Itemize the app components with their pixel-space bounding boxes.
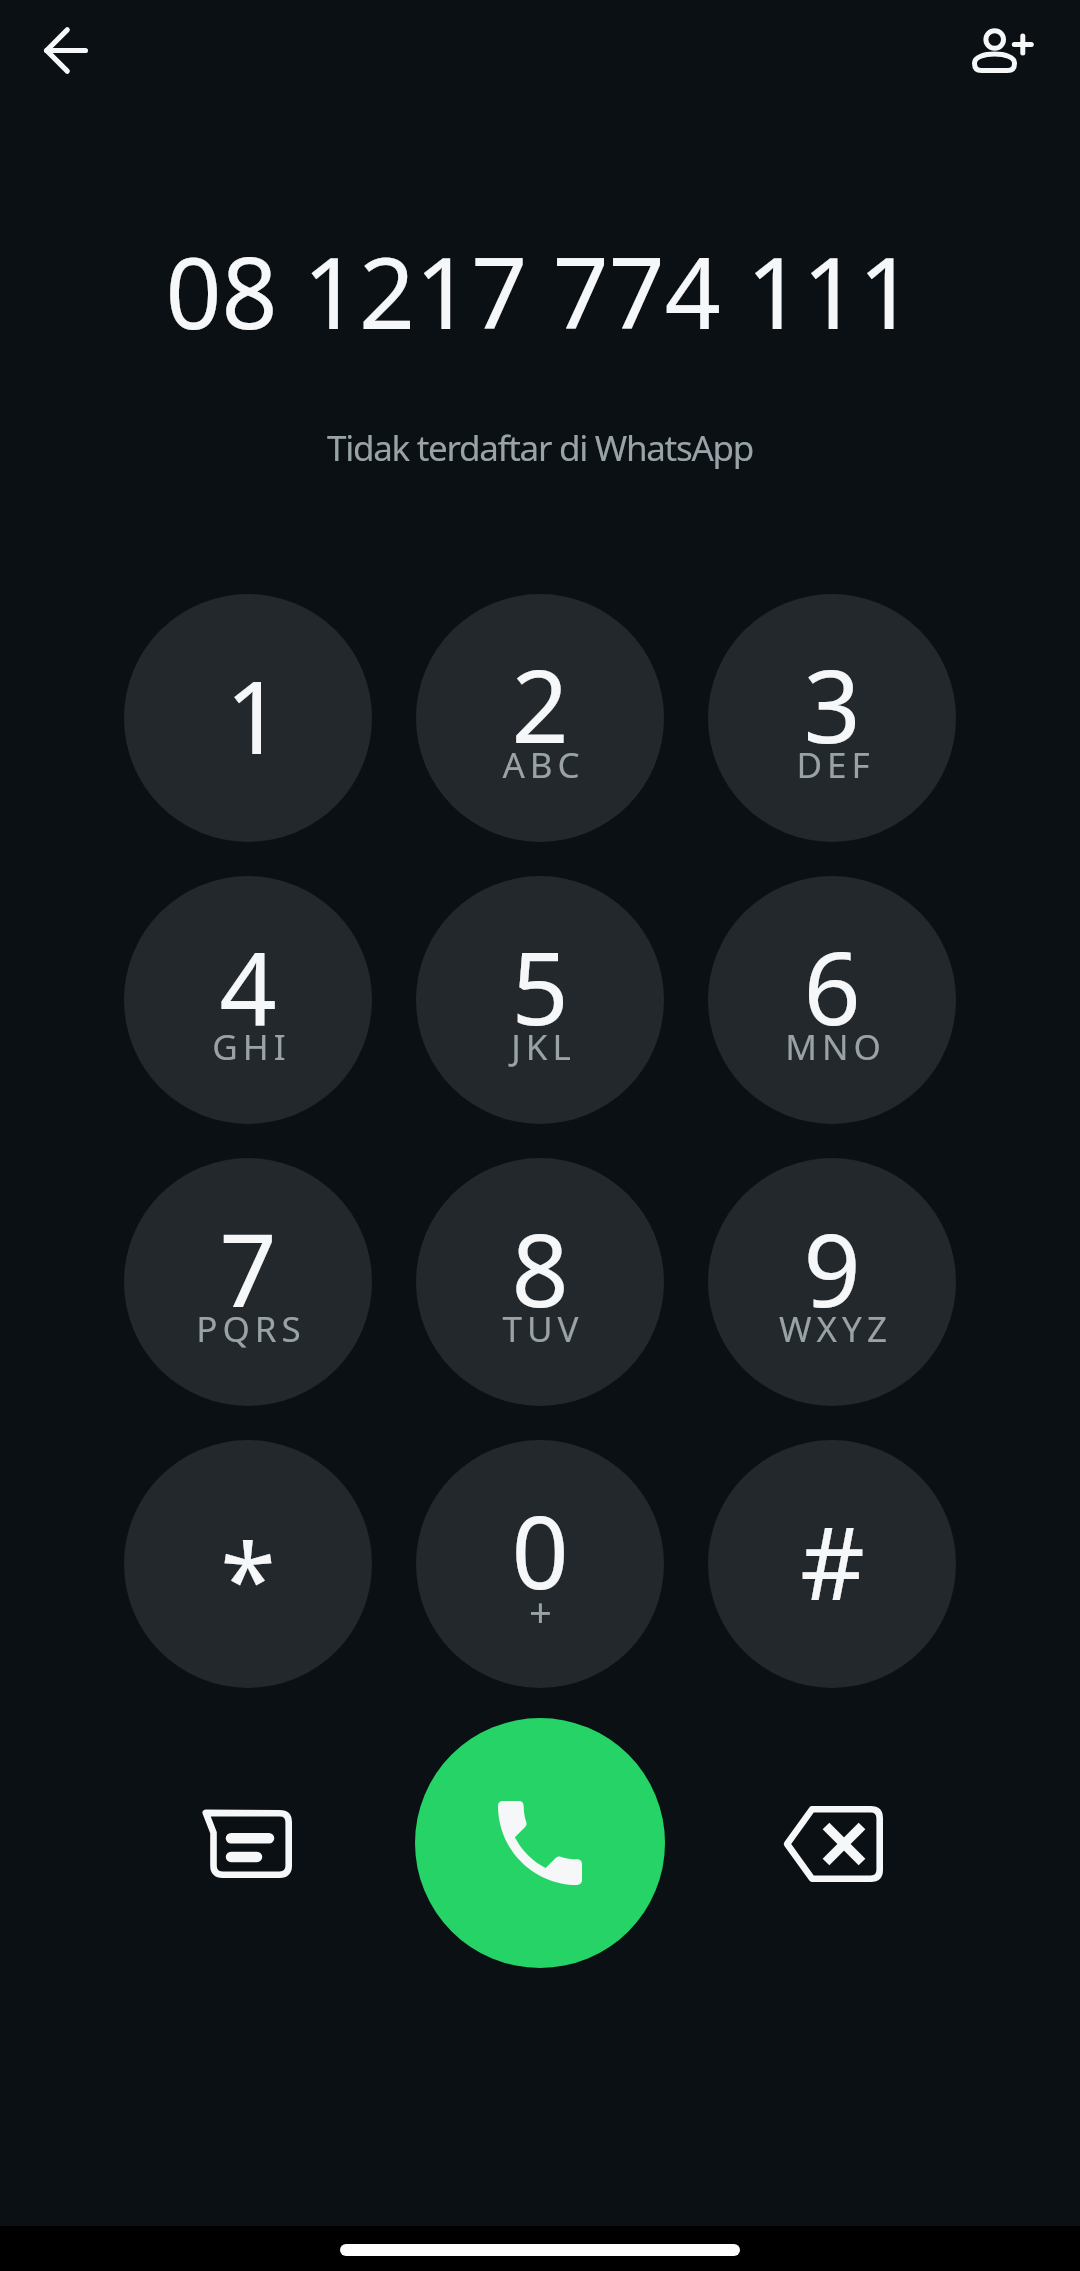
staticText: TUV xyxy=(502,1305,584,1353)
staticText: 9 xyxy=(803,1200,861,1320)
staticText: 1 xyxy=(225,647,283,783)
button[interactable]: 7 xyxy=(124,1158,372,1406)
button[interactable]: Backspace xyxy=(768,1779,898,1909)
staticText: 0 xyxy=(511,1482,569,1602)
button[interactable]: 8 xyxy=(416,1158,664,1406)
button[interactable]: 9 xyxy=(708,1158,956,1406)
staticText: # xyxy=(800,1493,865,1629)
staticText: * xyxy=(220,1510,276,1646)
button[interactable]: 0 xyxy=(416,1440,664,1688)
staticText: 6 xyxy=(803,918,861,1038)
staticText: Tidak terdaftar di WhatsApp xyxy=(327,424,753,472)
staticText: GHI xyxy=(212,1023,291,1071)
button[interactable]: 6 xyxy=(708,876,956,1124)
button[interactable]: * xyxy=(124,1440,372,1688)
staticText: JKL xyxy=(511,1023,576,1071)
staticText: DEF xyxy=(796,741,875,789)
button[interactable]: 4 xyxy=(124,876,372,1124)
button[interactable]: # xyxy=(708,1440,956,1688)
staticText: ABC xyxy=(502,741,585,789)
button[interactable]: 5 xyxy=(416,876,664,1124)
staticText: PQRS xyxy=(196,1305,306,1353)
button[interactable]: Send message xyxy=(182,1779,312,1909)
staticText: 2 xyxy=(511,636,569,756)
button[interactable]: 3 xyxy=(708,594,956,842)
staticText: 7 xyxy=(219,1200,277,1320)
staticText: + xyxy=(529,1584,552,1638)
staticText: 8 xyxy=(511,1200,569,1320)
staticText: WXYZ xyxy=(779,1305,892,1353)
button[interactable]: Call xyxy=(415,1718,665,1968)
staticText: 3 xyxy=(803,636,861,756)
staticText: 4 xyxy=(219,918,277,1038)
staticText: 08 1217 774 111 xyxy=(165,224,915,357)
staticText: 5 xyxy=(511,918,569,1038)
button[interactable]: 2 xyxy=(416,594,664,842)
button[interactable]: 1 xyxy=(124,594,372,842)
staticText: MNO xyxy=(785,1023,886,1071)
button[interactable]: Add contact xyxy=(957,5,1049,97)
button[interactable]: Back xyxy=(18,2,114,98)
